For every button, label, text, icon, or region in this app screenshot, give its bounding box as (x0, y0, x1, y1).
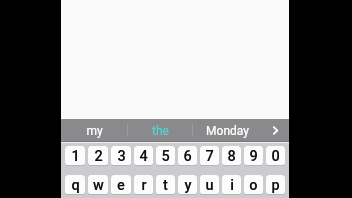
button[interactable]: u (200, 175, 219, 195)
staticText: 0 (271, 148, 280, 165)
button[interactable]: i (222, 175, 241, 195)
staticText: y (184, 177, 192, 194)
button[interactable]: 2 (88, 146, 108, 166)
staticText: Monday (206, 124, 249, 138)
button[interactable]: More suggestions (261, 119, 289, 142)
staticText: 1 (71, 148, 80, 165)
button[interactable]: 5 (156, 146, 175, 166)
staticText: p (271, 177, 280, 194)
button[interactable]: e (111, 175, 131, 195)
staticText: 2 (94, 148, 103, 165)
staticText: 9 (249, 148, 258, 165)
staticText: t (163, 177, 168, 194)
button[interactable]: 3 (111, 146, 131, 166)
button[interactable]: w (88, 175, 108, 195)
staticText: u (205, 177, 214, 194)
button[interactable]: r (134, 175, 153, 195)
staticText: i (230, 177, 234, 194)
button[interactable]: Monday (193, 119, 261, 142)
button[interactable]: t (156, 175, 175, 195)
button[interactable]: y (178, 175, 197, 195)
staticText: 4 (139, 148, 148, 165)
button[interactable]: 6 (178, 146, 197, 166)
staticText: i (230, 177, 234, 194)
staticText: 2 (94, 148, 103, 165)
staticText: y (184, 177, 192, 194)
staticText: q (71, 177, 80, 194)
staticText: 0 (271, 148, 280, 165)
button[interactable]: 1 (65, 146, 85, 166)
staticText: e (117, 177, 125, 194)
staticText: r (141, 177, 147, 194)
button[interactable]: 9 (244, 146, 263, 166)
button[interactable]: my (61, 119, 127, 142)
staticText: the (152, 124, 169, 138)
staticText: 5 (161, 148, 170, 165)
staticText: t (163, 177, 168, 194)
button[interactable]: 4 (134, 146, 153, 166)
staticText: 8 (227, 148, 236, 165)
button[interactable]: p (266, 175, 285, 195)
staticText: 3 (117, 148, 126, 165)
staticText: u (205, 177, 214, 194)
staticText: 8 (227, 148, 236, 165)
staticText: 7 (205, 148, 214, 165)
staticText: e (117, 177, 125, 194)
button[interactable]: 8 (222, 146, 241, 166)
staticText: 6 (183, 148, 192, 165)
button[interactable]: q (65, 175, 85, 195)
staticText: 1 (71, 148, 80, 165)
staticText: w (93, 177, 104, 194)
staticText: 3 (117, 148, 126, 165)
staticText: 5 (161, 148, 170, 165)
button[interactable]: 0 (266, 146, 285, 166)
staticText: 6 (183, 148, 192, 165)
staticText: o (249, 177, 258, 194)
staticText: 7 (205, 148, 214, 165)
button[interactable]: the (128, 119, 192, 142)
staticText: my (86, 124, 103, 138)
staticText: r (141, 177, 147, 194)
button[interactable]: 7 (200, 146, 219, 166)
button[interactable]: o (244, 175, 263, 195)
staticText: 9 (249, 148, 258, 165)
staticText: q (71, 177, 80, 194)
staticText: w (93, 177, 104, 194)
staticText: o (249, 177, 258, 194)
staticText: 4 (139, 148, 148, 165)
staticText: p (271, 177, 280, 194)
